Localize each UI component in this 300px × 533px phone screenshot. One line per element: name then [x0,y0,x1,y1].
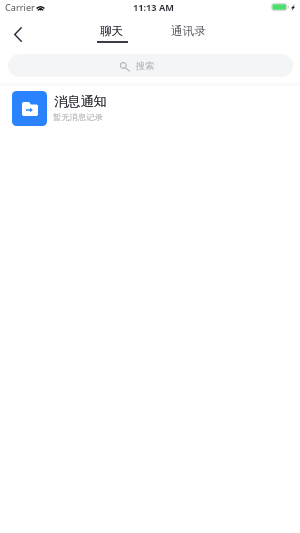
button[interactable]: 聊天 [88,24,136,48]
staticText: 搜索 [136,60,155,72]
staticText: 暂无消息记录 [53,112,103,122]
button[interactable]: 通讯录 [164,24,212,48]
staticText: 消息通知 [54,93,107,110]
staticText: 聊天 [100,24,124,39]
staticText: 消息通知 [54,93,107,110]
button[interactable]: 消息通知 [0,85,300,131]
staticText: 通讯录 [171,24,206,39]
button[interactable]: Back [2,19,33,49]
staticText: Carrier [5,1,35,14]
button[interactable]: 搜索 [8,54,293,77]
staticText: 11:13 AM [133,1,175,14]
staticText: 聊天 [100,24,124,39]
